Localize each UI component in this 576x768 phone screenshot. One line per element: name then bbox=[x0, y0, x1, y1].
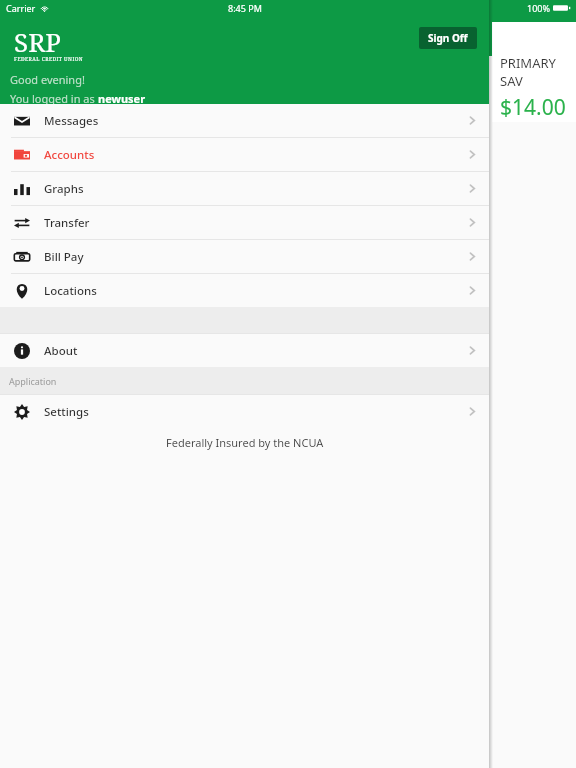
staticText: Application bbox=[9, 375, 57, 387]
button[interactable]: Locations bbox=[0, 274, 489, 307]
button[interactable]: Bill Pay bbox=[0, 240, 489, 273]
staticText: Federally Insured by the NCUA bbox=[166, 435, 324, 450]
staticText: You logged in as bbox=[10, 91, 98, 106]
staticText: Bill Pay bbox=[44, 249, 84, 265]
button[interactable]: About bbox=[0, 334, 489, 367]
button[interactable]: Graphs bbox=[0, 172, 489, 205]
staticText: FEDERAL CREDIT UNION bbox=[14, 56, 84, 63]
button[interactable]: Transfer bbox=[0, 206, 489, 239]
staticText: Carrier bbox=[6, 2, 36, 14]
staticText: Messages bbox=[44, 113, 99, 129]
staticText: About bbox=[44, 343, 78, 359]
button[interactable]: Settings bbox=[0, 395, 489, 428]
staticText: 100% bbox=[527, 2, 550, 14]
staticText: $14.00 bbox=[500, 93, 566, 122]
staticText: 8:45 PM bbox=[228, 2, 262, 14]
button[interactable]: Sign Off bbox=[419, 27, 477, 49]
button[interactable]: PRIMARY SAV bbox=[492, 22, 576, 122]
staticText: Locations bbox=[44, 283, 97, 299]
button[interactable]: Accounts bbox=[0, 138, 489, 171]
button[interactable]: Messages bbox=[0, 104, 489, 137]
button[interactable]: Open navigation menu bbox=[500, 20, 534, 54]
staticText: Sign Off bbox=[428, 31, 468, 45]
staticText: SRP bbox=[14, 24, 61, 59]
staticText: Good evening! bbox=[10, 72, 85, 87]
staticText: Graphs bbox=[44, 181, 84, 197]
staticText: PRIMARY SAV bbox=[500, 54, 576, 90]
staticText: Accounts bbox=[44, 147, 95, 163]
staticText: newuser bbox=[98, 91, 146, 106]
staticText: Transfer bbox=[44, 215, 90, 231]
staticText: Settings bbox=[44, 404, 89, 420]
